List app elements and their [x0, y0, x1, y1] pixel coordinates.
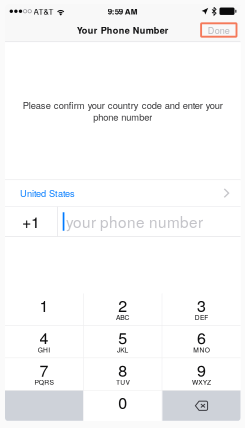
staticText: 8	[118, 358, 127, 381]
button[interactable]: 8	[84, 358, 162, 390]
button[interactable]: 1	[5, 293, 83, 325]
staticText: ABC	[116, 312, 130, 322]
staticText: JKL	[117, 345, 129, 354]
staticText: 9	[197, 358, 206, 381]
button[interactable]: 2	[84, 293, 162, 325]
staticText: DEF	[195, 312, 208, 322]
staticText: United States	[20, 186, 75, 200]
staticText: 4	[39, 326, 48, 349]
staticText: +1	[22, 210, 40, 233]
staticText: WXYZ	[192, 377, 211, 387]
button[interactable]: 4	[5, 326, 83, 358]
button[interactable]: 3	[162, 293, 240, 325]
button[interactable]: 5	[84, 326, 162, 358]
staticText: MNO	[193, 345, 210, 354]
staticText: 3	[197, 293, 206, 316]
staticText: 7	[39, 358, 48, 381]
staticText: 1	[39, 293, 48, 316]
staticText: your phone number	[66, 210, 203, 232]
staticText: AT&T	[33, 5, 53, 17]
staticText: phone number	[93, 110, 152, 123]
staticText: Your Phone Number	[77, 23, 169, 36]
button[interactable]: Done	[201, 23, 236, 37]
button[interactable]: 6	[162, 326, 240, 358]
staticText: Please confirm your country code and ent…	[23, 98, 223, 112]
staticText: TUV	[116, 377, 130, 387]
button[interactable]: United States	[5, 180, 240, 206]
staticText: 0	[118, 391, 127, 414]
staticText: 6	[197, 326, 206, 349]
staticText: GHI	[38, 345, 50, 354]
staticText: 9:59 AM	[108, 5, 138, 17]
button[interactable]: Delete	[162, 391, 240, 421]
button[interactable]: 0	[84, 391, 162, 421]
button[interactable]: 7	[5, 358, 83, 390]
staticText: PQRS	[34, 377, 53, 387]
button[interactable]: 9	[162, 358, 240, 390]
staticText: 5	[118, 326, 127, 349]
staticText: 2	[118, 293, 127, 316]
staticText: Done	[208, 23, 230, 36]
